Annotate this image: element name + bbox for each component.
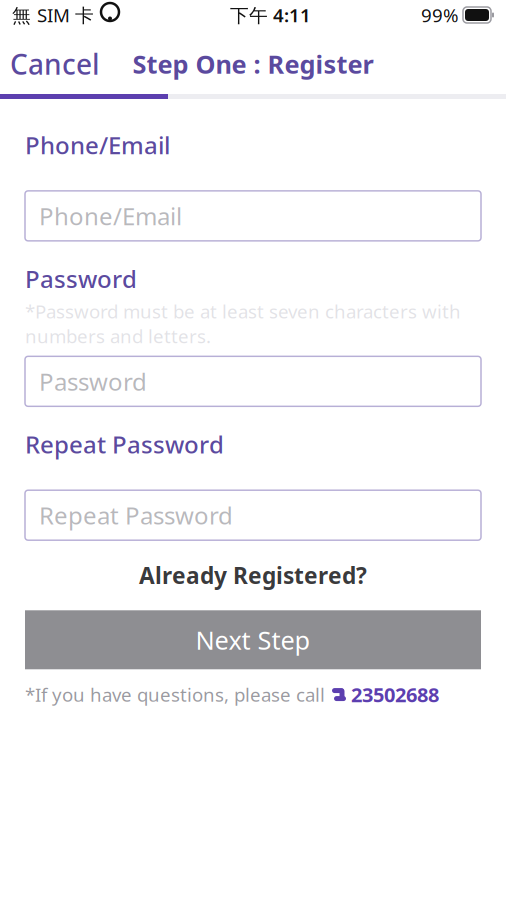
- button[interactable]: Password: [25, 356, 481, 406]
- button[interactable]: Phone/Email: [25, 191, 481, 241]
- staticText: *If you have questions, please call: [25, 682, 330, 707]
- button[interactable]: Next Step: [25, 610, 481, 669]
- staticText: Password: [25, 263, 137, 295]
- staticText: Repeat Password: [25, 428, 224, 460]
- staticText: *Password must be at least seven charact…: [25, 299, 461, 348]
- staticText: Password: [39, 365, 147, 397]
- staticText: 無 SIM 卡: [12, 3, 94, 27]
- staticText: Phone/Email: [39, 200, 182, 232]
- staticText: Cancel: [10, 45, 100, 83]
- staticText: Repeat Password: [39, 499, 233, 531]
- staticText: 23502688: [346, 681, 439, 708]
- staticText: Phone/Email: [25, 129, 170, 161]
- staticText: 99%: [421, 3, 459, 27]
- staticText: Next Step: [195, 623, 310, 657]
- button[interactable]: Cancel: [0, 42, 110, 86]
- staticText: 下午 4:11: [230, 3, 311, 27]
- staticText: Already Registered?: [139, 560, 367, 590]
- button[interactable]: Repeat Password: [25, 490, 481, 540]
- staticText: Step One : Register: [132, 47, 373, 81]
- staticText: [94, 0, 100, 30]
